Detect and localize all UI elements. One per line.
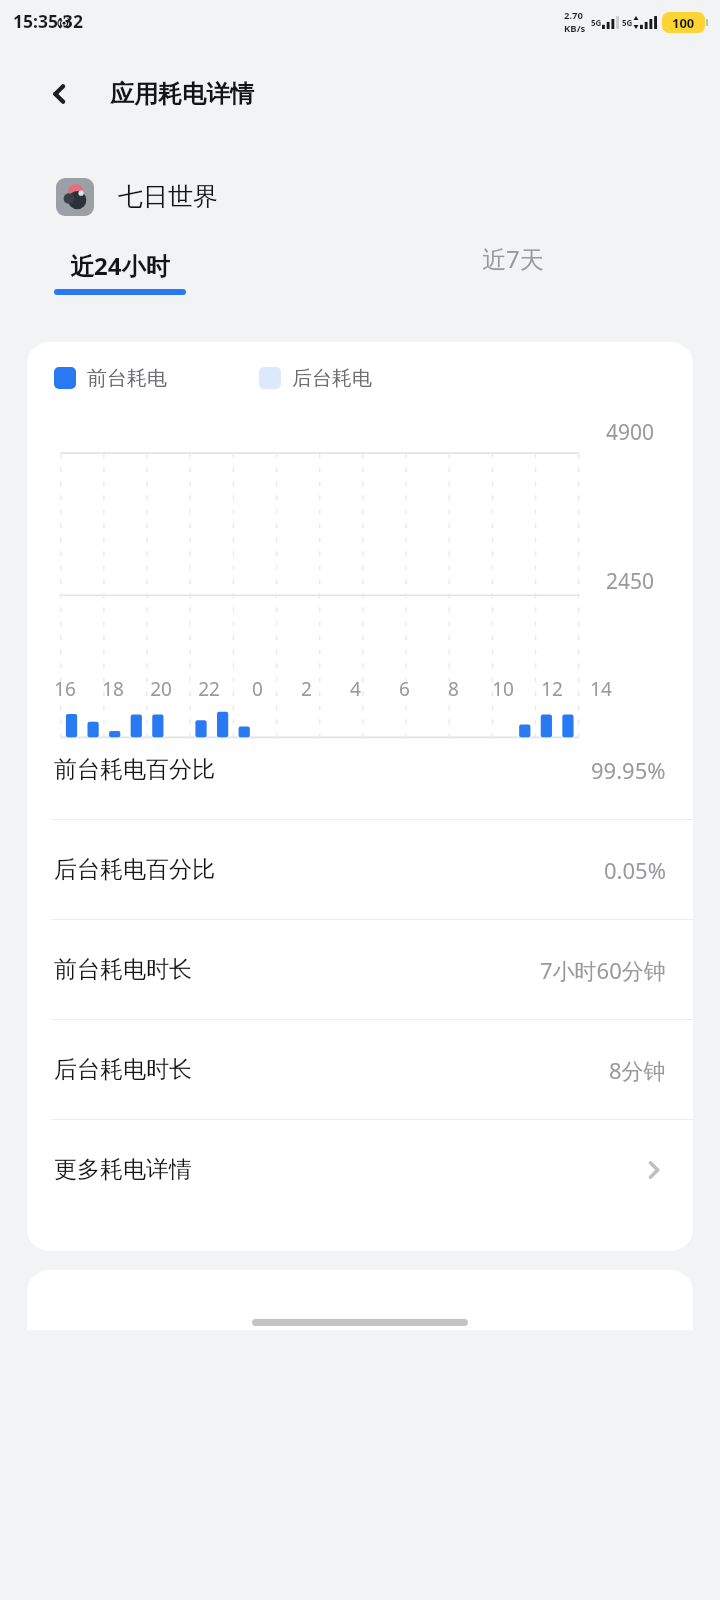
staticText: KB/s bbox=[564, 22, 586, 35]
button[interactable]: 前台耗电百分比 bbox=[27, 720, 693, 819]
staticText: 后台耗电 bbox=[292, 366, 372, 391]
staticText: 22 bbox=[198, 676, 220, 702]
staticText: 8分钟 bbox=[609, 1055, 666, 1085]
staticText: 应用耗电详情 bbox=[110, 79, 254, 109]
staticText: 2.70 bbox=[564, 9, 583, 22]
staticText: 更多耗电详情 bbox=[54, 1155, 192, 1184]
staticText: 6 bbox=[399, 676, 410, 702]
staticText: 4900 bbox=[606, 418, 655, 447]
staticText: 15:35:32 bbox=[13, 9, 83, 33]
staticText: 5G bbox=[591, 17, 602, 28]
other: More battery details bbox=[640, 1157, 666, 1183]
staticText: 后台耗电时长 bbox=[54, 1055, 192, 1084]
button[interactable]: 后台耗电时长 bbox=[27, 1020, 693, 1119]
staticText: 后台耗电百分比 bbox=[54, 855, 215, 884]
staticText: 14 bbox=[590, 676, 612, 702]
staticText: 16 bbox=[54, 676, 76, 702]
staticText: 前台耗电 bbox=[87, 366, 167, 391]
button[interactable]: 后台耗电百分比 bbox=[27, 820, 693, 919]
staticText: 4 bbox=[350, 676, 361, 702]
staticText: 5G bbox=[622, 17, 633, 28]
staticText: 2450 bbox=[606, 567, 655, 596]
staticText: 近7天 bbox=[482, 242, 544, 275]
staticText: 2 bbox=[301, 676, 312, 702]
staticText: 前台耗电时长 bbox=[54, 955, 192, 984]
staticText: 前台耗电百分比 bbox=[54, 755, 215, 784]
button[interactable]: 前台耗电时长 bbox=[27, 920, 693, 1019]
staticText: 10 bbox=[492, 676, 514, 702]
button[interactable]: 更多耗电详情 bbox=[27, 1120, 693, 1219]
staticText: 18 bbox=[102, 676, 124, 702]
staticText: 近24小时 bbox=[70, 249, 170, 282]
staticText: 7小时60分钟 bbox=[540, 955, 666, 985]
staticText: 七日世界 bbox=[118, 181, 218, 212]
button[interactable]: Back bbox=[34, 68, 86, 120]
staticText: 12 bbox=[541, 676, 563, 702]
staticText: 100 bbox=[672, 14, 695, 32]
button[interactable]: 近24小时 bbox=[54, 249, 186, 295]
staticText: 0 bbox=[252, 676, 263, 702]
button[interactable]: 近7天 bbox=[482, 242, 544, 275]
staticText: 99.95% bbox=[591, 755, 666, 785]
staticText: 8 bbox=[448, 676, 459, 702]
staticText: 20 bbox=[150, 676, 172, 702]
staticText: 0.05% bbox=[604, 855, 666, 885]
